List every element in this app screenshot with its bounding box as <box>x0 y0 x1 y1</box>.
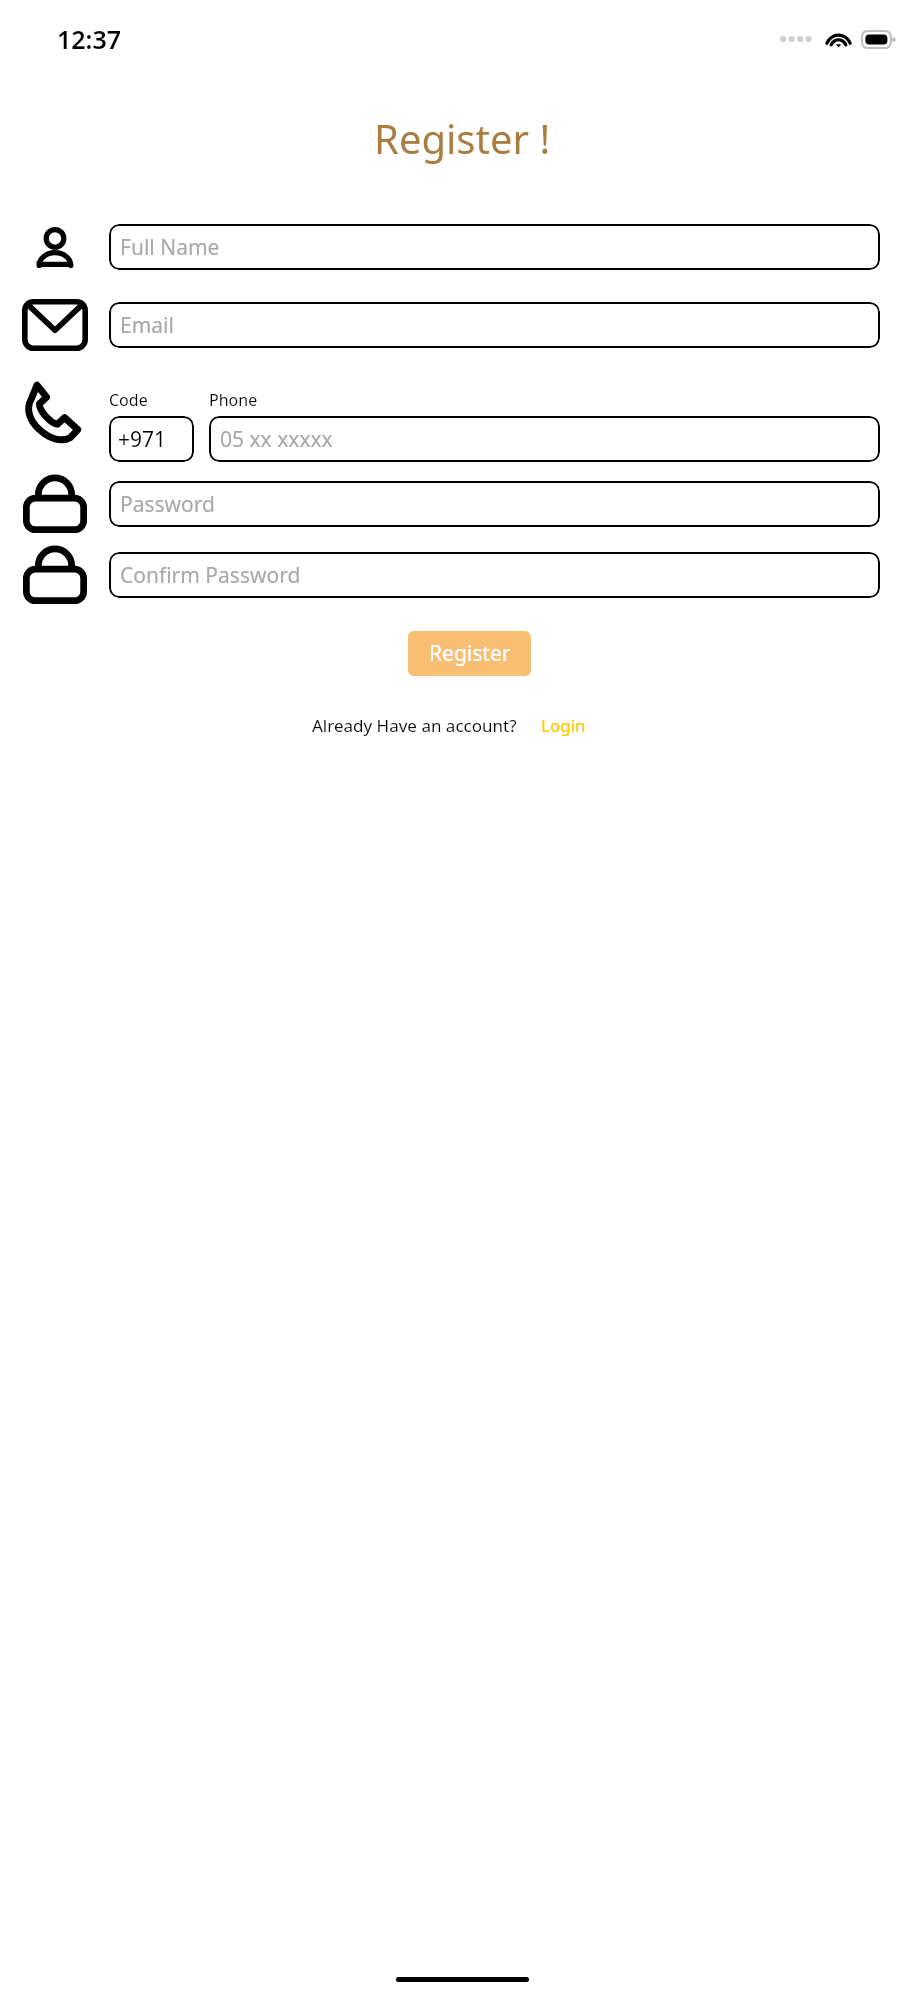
staticText: Register <box>429 639 511 668</box>
other: Email <box>22 299 88 351</box>
staticText: 05 xx xxxxx <box>220 425 333 454</box>
button[interactable]: Register <box>408 631 531 676</box>
staticText: Phone <box>209 389 258 411</box>
other: Password <box>23 475 87 533</box>
button[interactable]: 05 xx xxxxx <box>209 416 880 462</box>
button[interactable]: Email <box>109 302 880 348</box>
staticText: Email <box>120 311 174 340</box>
staticText: Already Have an account? <box>312 714 517 737</box>
staticText: 12:37 <box>57 22 122 56</box>
button[interactable]: Password <box>109 481 880 527</box>
staticText: Register ! <box>374 111 551 165</box>
button[interactable]: Login <box>541 714 586 737</box>
button[interactable]: Confirm Password <box>109 552 880 598</box>
button[interactable]: Full Name <box>109 224 880 270</box>
staticText: Password <box>120 490 215 519</box>
staticText: Code <box>109 389 148 411</box>
staticText: +971 <box>118 425 167 454</box>
other: Phone <box>25 384 85 444</box>
staticText: Confirm Password <box>120 561 301 590</box>
staticText: Login <box>541 714 586 737</box>
button[interactable]: +971 <box>109 416 194 462</box>
staticText: Full Name <box>120 233 220 262</box>
other: Full name <box>37 227 73 267</box>
other: Password <box>23 546 87 604</box>
